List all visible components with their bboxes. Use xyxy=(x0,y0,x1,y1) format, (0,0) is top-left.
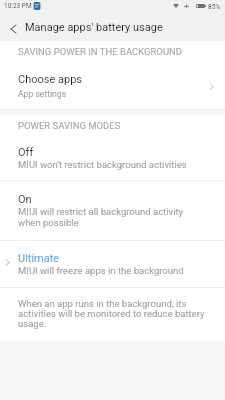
staticText: 10:23 PM xyxy=(4,2,32,10)
staticText: MIUI will freeze apps in the background xyxy=(18,265,184,276)
staticText: POWER SAVING MODES xyxy=(18,120,225,131)
staticText: MIUI will restrict all background activi… xyxy=(18,206,184,217)
staticText: 85% xyxy=(208,3,221,11)
staticText: SAVING POWER IN THE BACKGROUND xyxy=(18,46,225,57)
button[interactable]: Back xyxy=(0,16,24,41)
staticText: App settings xyxy=(18,89,67,99)
staticText: Choose apps xyxy=(18,73,83,86)
staticText: When an app runs in the background, its … xyxy=(18,298,208,329)
staticText: when possible xyxy=(18,217,79,228)
staticText: Manage apps' battery usage xyxy=(25,21,163,34)
staticText: Ultimate xyxy=(18,252,60,265)
button[interactable]: Choose apps xyxy=(0,57,225,108)
staticText: Off xyxy=(18,146,34,159)
staticText: On xyxy=(18,193,32,206)
staticText: MIUI won't restrict background activitie… xyxy=(18,159,187,170)
button[interactable]: Off xyxy=(0,131,225,180)
button[interactable]: On xyxy=(0,181,225,240)
button[interactable]: Ultimate xyxy=(0,241,225,287)
